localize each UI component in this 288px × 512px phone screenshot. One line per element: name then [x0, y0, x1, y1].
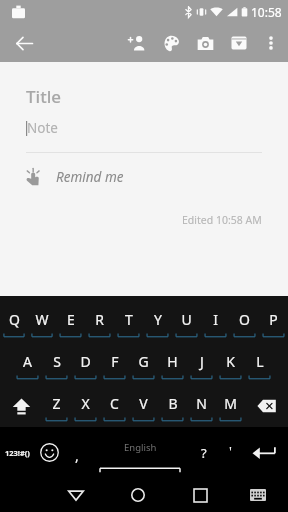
- button[interactable]: S: [42, 343, 71, 385]
- staticText: English: [124, 441, 157, 454]
- staticText: O: [239, 310, 250, 329]
- staticText: 123!#(): [5, 448, 30, 458]
- button[interactable]: ?: [190, 427, 218, 478]
- button[interactable]: U: [172, 301, 201, 343]
- button[interactable]: G: [129, 343, 158, 385]
- staticText: V: [139, 394, 148, 413]
- button[interactable]: More options: [256, 28, 286, 58]
- button[interactable]: O: [230, 301, 259, 343]
- button[interactable]: A: [13, 343, 42, 385]
- button[interactable]: M: [216, 385, 245, 427]
- staticText: B: [168, 394, 178, 413]
- button[interactable]: Note: [0, 119, 288, 137]
- button[interactable]: 123!#(): [0, 427, 34, 478]
- button[interactable]: K: [216, 343, 245, 385]
- button[interactable]: C: [100, 385, 129, 427]
- button[interactable]: Navigate up: [6, 25, 42, 61]
- button[interactable]: D: [71, 343, 100, 385]
- button[interactable]: Remind me: [0, 163, 288, 191]
- staticText: X: [81, 394, 90, 413]
- staticText: D: [80, 352, 91, 371]
- staticText: I: [213, 310, 218, 329]
- staticText: N: [196, 394, 207, 413]
- button[interactable]: ,: [64, 427, 90, 478]
- staticText: A: [23, 352, 32, 371]
- staticText: F: [111, 352, 119, 371]
- button[interactable]: Q: [0, 301, 28, 343]
- button[interactable]: Title: [0, 85, 288, 108]
- staticText: Note: [27, 119, 58, 137]
- button[interactable]: Space: [90, 427, 190, 478]
- button[interactable]: Shift: [0, 385, 42, 427]
- staticText: Edited 10:58 AM: [182, 213, 262, 227]
- button[interactable]: Archive: [222, 26, 256, 60]
- staticText: L: [256, 352, 264, 371]
- button[interactable]: Change color: [154, 26, 188, 60]
- staticText: Z: [52, 394, 61, 413]
- staticText: H: [167, 352, 178, 371]
- staticText: 10:58: [251, 4, 282, 20]
- button[interactable]: T: [114, 301, 143, 343]
- button[interactable]: L: [245, 343, 274, 385]
- staticText: ': [229, 442, 232, 460]
- staticText: Y: [154, 310, 162, 329]
- staticText: W: [35, 310, 49, 329]
- staticText: ,: [75, 446, 79, 465]
- staticText: J: [200, 352, 204, 371]
- button[interactable]: ': [218, 427, 242, 478]
- staticText: Title: [26, 85, 62, 108]
- staticText: S: [53, 352, 61, 371]
- button[interactable]: H: [158, 343, 187, 385]
- button[interactable]: N: [187, 385, 216, 427]
- button[interactable]: Y: [143, 301, 172, 343]
- staticText: K: [226, 352, 235, 371]
- button[interactable]: R: [85, 301, 114, 343]
- button[interactable]: Z: [42, 385, 71, 427]
- staticText: T: [125, 310, 133, 329]
- button[interactable]: F: [100, 343, 129, 385]
- button[interactable]: W: [28, 301, 56, 343]
- button[interactable]: E: [56, 301, 85, 343]
- staticText: E: [67, 310, 75, 329]
- staticText: P: [269, 310, 278, 329]
- button[interactable]: V: [129, 385, 158, 427]
- button[interactable]: J: [187, 343, 216, 385]
- staticText: ?: [201, 444, 207, 462]
- staticText: Q: [9, 310, 20, 329]
- button[interactable]: Emoji: [34, 427, 64, 478]
- staticText: M: [224, 394, 237, 413]
- button[interactable]: Switch input method: [231, 478, 284, 512]
- staticText: U: [181, 310, 192, 329]
- staticText: Remind me: [56, 168, 124, 186]
- staticText: G: [138, 352, 149, 371]
- button[interactable]: X: [71, 385, 100, 427]
- button[interactable]: Back: [45, 478, 107, 512]
- button[interactable]: B: [158, 385, 187, 427]
- staticText: C: [110, 394, 119, 413]
- button[interactable]: Recent apps: [169, 478, 231, 512]
- button[interactable]: Collaborator: [120, 26, 154, 60]
- staticText: R: [95, 310, 104, 329]
- button[interactable]: Enter: [242, 427, 288, 478]
- button[interactable]: Add image: [188, 26, 222, 60]
- button[interactable]: I: [201, 301, 230, 343]
- button[interactable]: P: [259, 301, 288, 343]
- button[interactable]: Delete: [245, 385, 288, 427]
- button[interactable]: Home: [107, 478, 169, 512]
